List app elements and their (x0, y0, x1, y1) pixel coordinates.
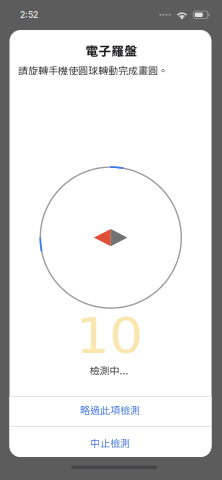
staticText: 中止檢測 (90, 435, 130, 450)
staticText: 檢測中... (89, 363, 128, 377)
staticText: 請旋轉手機使圓球轉動完成畫圓。 (18, 63, 168, 77)
button[interactable]: 中止檢測 (9, 426, 211, 456)
staticText: 略過此項檢測 (80, 402, 140, 417)
staticText: 2:52 (20, 10, 38, 20)
staticText: 電子羅盤 (85, 41, 137, 59)
staticText: 10 (78, 307, 140, 364)
button[interactable]: 略過此項檢測 (9, 396, 211, 426)
